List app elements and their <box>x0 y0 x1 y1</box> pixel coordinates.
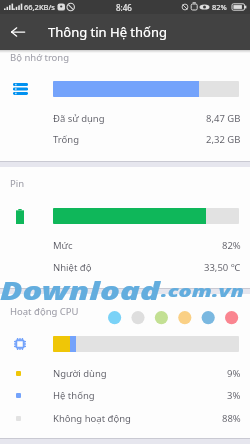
staticText: Bộ nhớ trong <box>10 51 70 64</box>
staticText: Không hoạt động <box>53 412 131 425</box>
button[interactable]: Mức <box>0 234 250 256</box>
staticText: 2,32 GB <box>206 133 241 146</box>
staticText: Mức <box>53 239 73 252</box>
staticText: 8,47 GB <box>206 112 241 125</box>
staticText: 9% <box>227 367 241 380</box>
button[interactable]: Không hoạt động <box>0 407 250 429</box>
staticText: Nhiệt độ <box>53 261 92 274</box>
staticText: Trống <box>53 133 80 146</box>
staticText: 33,50 ℃ <box>204 261 241 274</box>
staticText: 8:46 <box>116 2 132 13</box>
button[interactable]: Người dùng <box>0 362 250 384</box>
button[interactable]: Trống <box>0 128 250 150</box>
staticText: Download <box>0 274 160 307</box>
staticText: 88% <box>222 412 241 425</box>
staticText: Người dùng <box>53 367 107 380</box>
staticText: Hoạt động CPU <box>10 305 79 318</box>
staticText: Pin <box>10 177 25 190</box>
button[interactable]: Đã sử dụng <box>0 107 250 129</box>
button[interactable]: Back <box>0 14 36 50</box>
staticText: .com.vn <box>161 281 245 301</box>
staticText: 82% <box>222 239 241 252</box>
button[interactable]: Hệ thống <box>0 384 250 406</box>
staticText: Hệ thống <box>53 389 95 402</box>
staticText: 3% <box>227 389 241 402</box>
button[interactable]: Nhiệt độ <box>0 256 250 278</box>
staticText: Thông tin Hệ thống <box>48 23 167 41</box>
staticText: Đã sử dụng <box>53 112 105 125</box>
staticText: 82% <box>212 2 227 12</box>
staticText: 66,2KB/s <box>24 2 55 12</box>
